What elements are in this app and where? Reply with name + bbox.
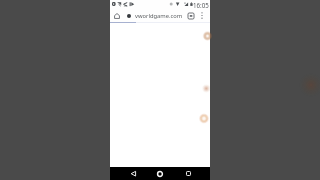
button[interactable]: More options [197,9,207,22]
button[interactable]: Back [122,167,144,180]
button[interactable]: Home [110,9,124,22]
staticText: vworldgame.com [135,12,183,20]
button[interactable]: Switch tabs [185,9,197,22]
button[interactable]: Recent apps [177,167,199,180]
button[interactable]: vworldgame.com [127,9,193,22]
staticText: 16:05 [193,1,209,9]
button[interactable]: Home [149,167,171,180]
